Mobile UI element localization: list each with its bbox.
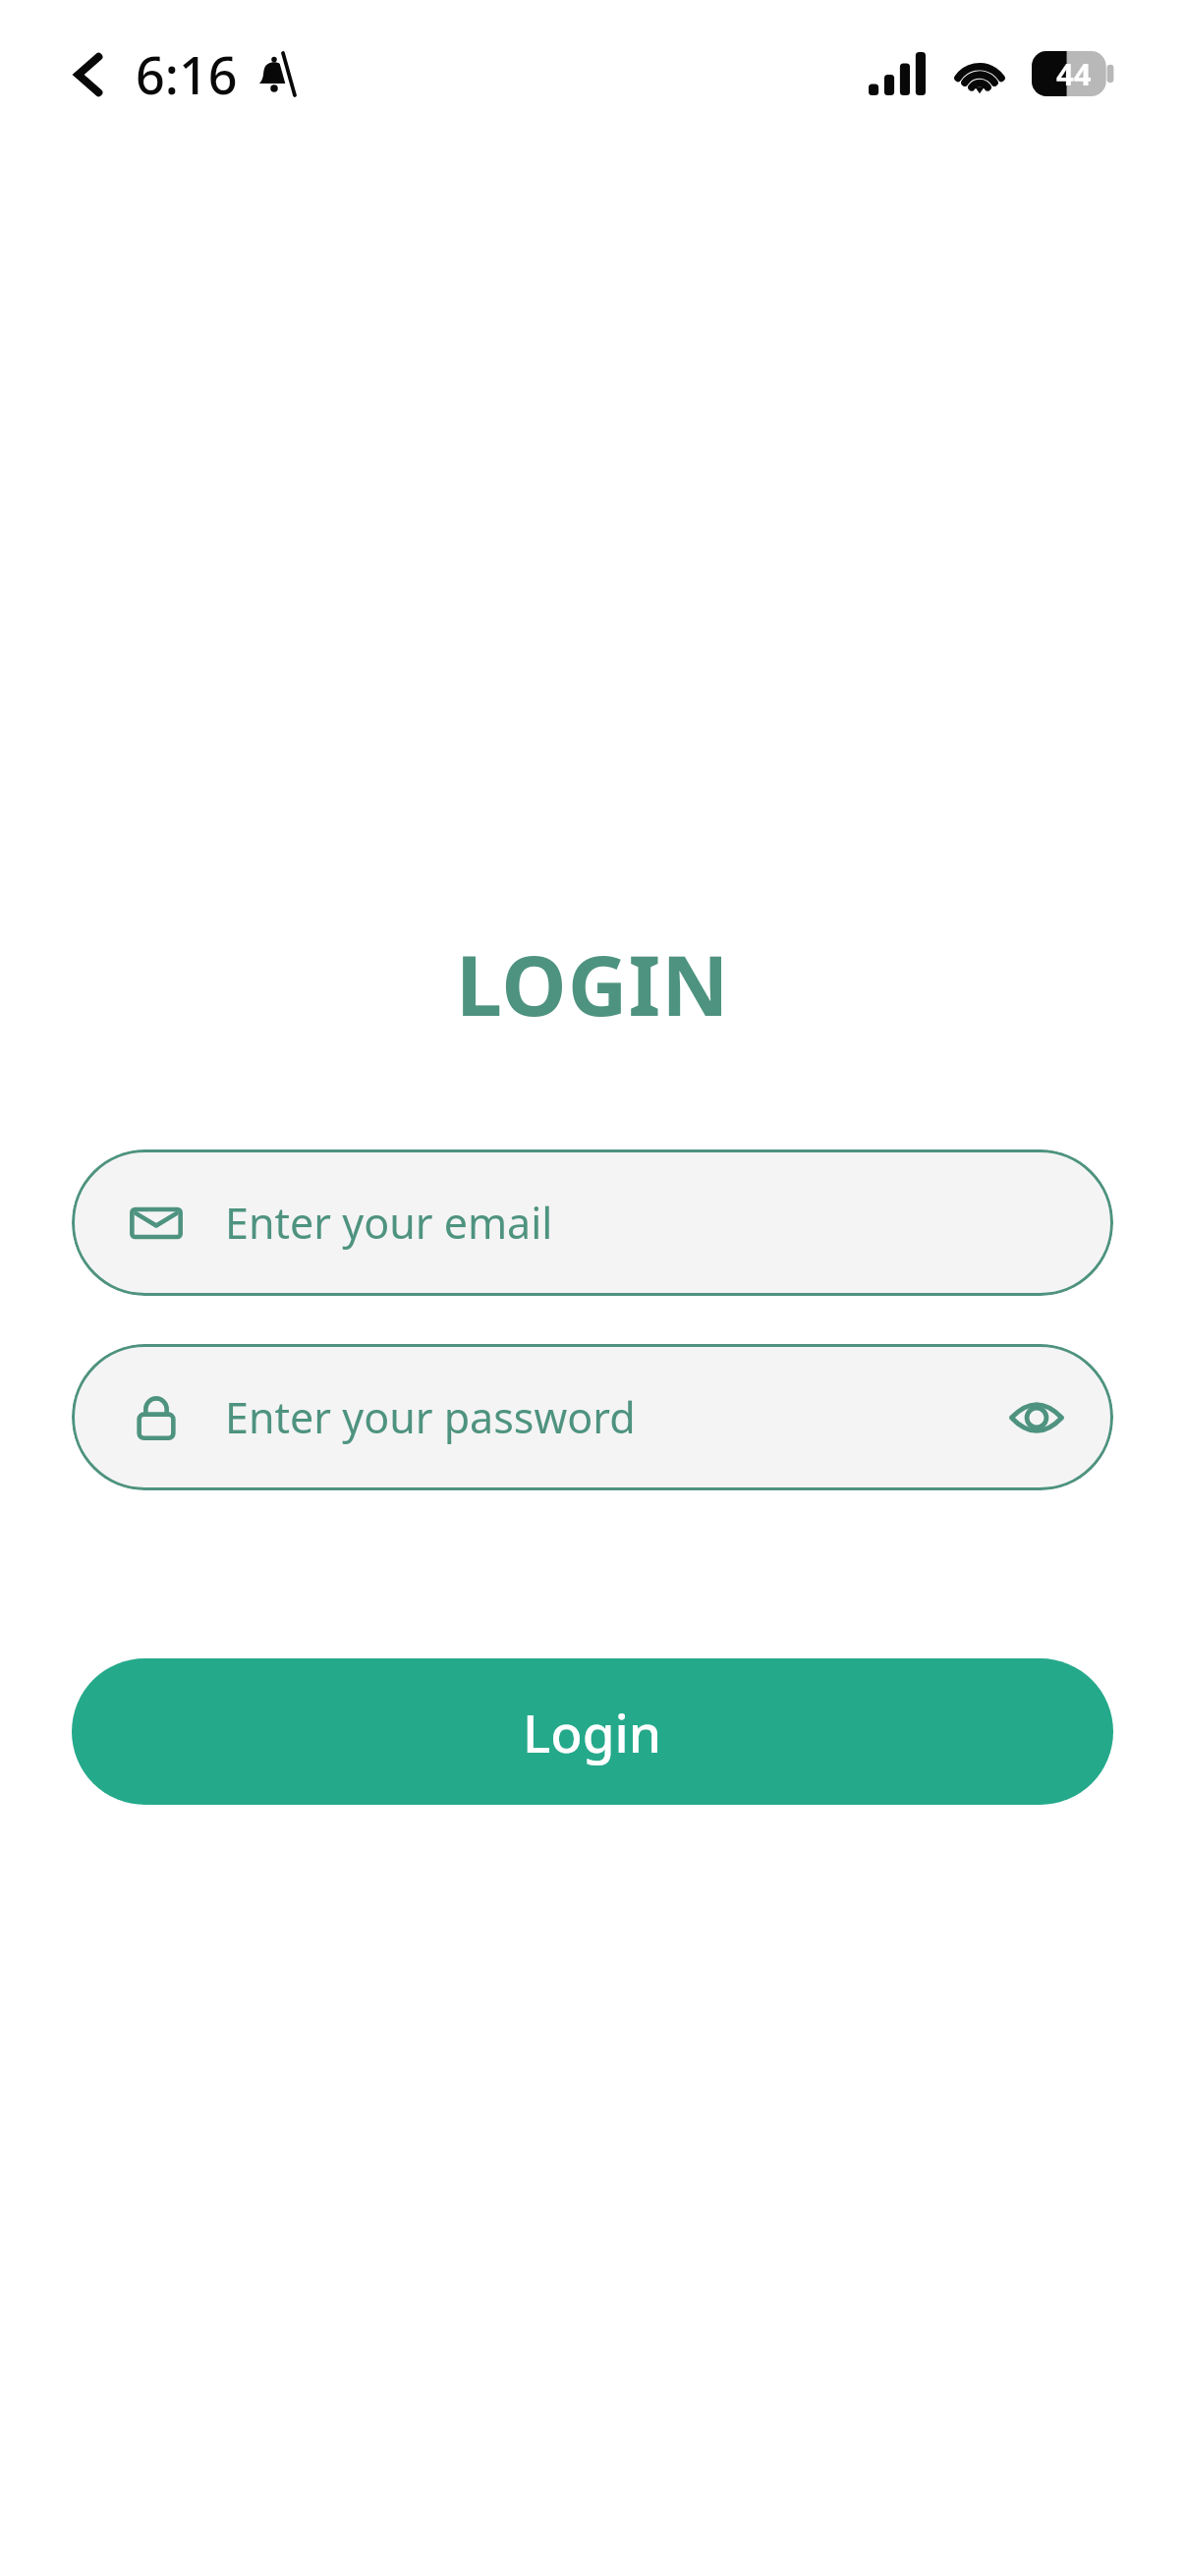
- button[interactable]: Back: [61, 47, 116, 102]
- button[interactable]: Login: [72, 1658, 1113, 1805]
- staticText: Login: [523, 1697, 662, 1767]
- staticText: 44: [1056, 53, 1092, 94]
- button[interactable]: Enter your password: [72, 1344, 1113, 1490]
- button[interactable]: Enter your email: [72, 1149, 1113, 1296]
- staticText: 6:16: [136, 39, 238, 109]
- staticText: Enter your email: [225, 1194, 553, 1252]
- staticText: LOGIN: [456, 927, 730, 1039]
- button[interactable]: Show password: [1005, 1386, 1068, 1449]
- staticText: Enter your password: [225, 1388, 636, 1446]
